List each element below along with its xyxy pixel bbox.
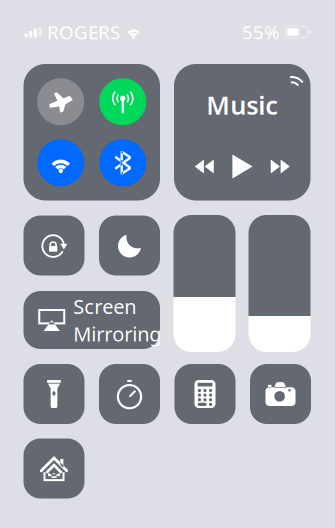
staticText: Music [206, 88, 278, 122]
button[interactable]: Cellular Data [99, 78, 146, 125]
button[interactable]: Volume [248, 215, 310, 352]
button[interactable]: Calculator [174, 364, 235, 424]
button[interactable]: Previous [189, 153, 219, 179]
button[interactable]: Next [265, 153, 295, 179]
button[interactable]: Home [23, 438, 84, 498]
button[interactable]: Rotation Lock [23, 215, 84, 275]
staticText: ROGERS [47, 20, 120, 44]
button[interactable]: Bluetooth [99, 139, 146, 186]
button[interactable]: Play [227, 153, 257, 179]
button[interactable]: Camera [250, 364, 311, 424]
button[interactable]: Wi-Fi [37, 139, 84, 186]
button[interactable]: Brightness [173, 215, 235, 352]
staticText: 55% [242, 20, 280, 44]
button[interactable]: Screen [23, 291, 160, 349]
button[interactable]: Flashlight [23, 364, 84, 424]
staticText: Mirroring [73, 320, 161, 347]
button[interactable]: Airplane Mode [37, 78, 84, 125]
staticText: Screen [73, 293, 136, 319]
button[interactable]: Timer [99, 364, 160, 424]
button[interactable]: Do Not Disturb [99, 215, 160, 275]
